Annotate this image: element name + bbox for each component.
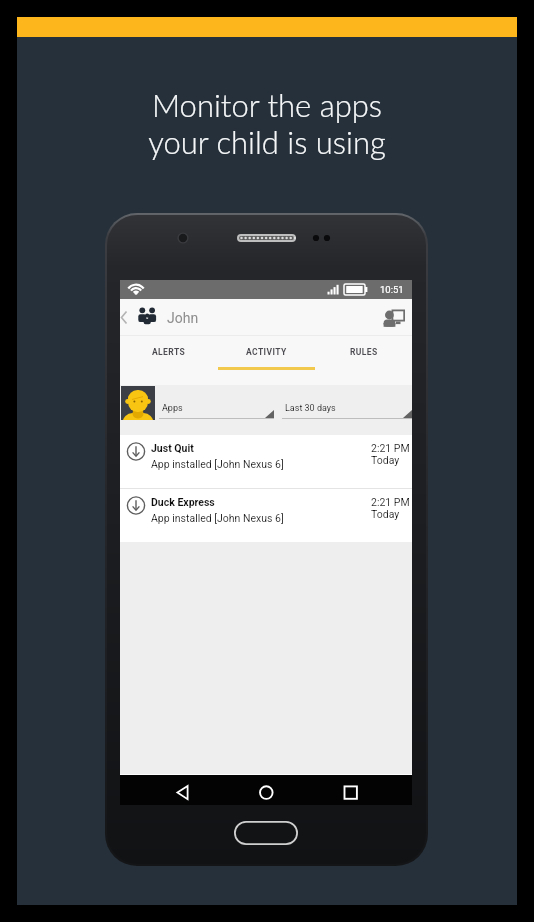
staticText: App installed [John Nexus 6] (151, 512, 284, 524)
staticText: 2:21 PM (371, 442, 410, 454)
staticText: ALERTS (152, 347, 186, 357)
staticText: Apps (162, 403, 183, 414)
button[interactable]: Last 30 days (282, 385, 412, 435)
staticText: App installed [John Nexus 6] (151, 458, 284, 470)
button[interactable]: Duck Express (120, 489, 412, 542)
staticText: Monitor the apps your child is using (17, 86, 517, 161)
staticText: Today (371, 508, 400, 520)
staticText: Duck Express (151, 496, 215, 508)
button[interactable]: Back (120, 299, 134, 336)
staticText: John (167, 310, 199, 326)
staticText: 2:21 PM (371, 496, 410, 508)
button[interactable]: ACTIVITY (218, 336, 315, 385)
button[interactable]: Remote device (376, 299, 412, 336)
staticText: 10:51 (380, 284, 404, 295)
button[interactable]: ALERTS (120, 336, 218, 385)
staticText: Today (371, 454, 400, 466)
button[interactable]: RULES (315, 336, 412, 385)
staticText: ACTIVITY (246, 347, 287, 357)
staticText: Last 30 days (285, 403, 336, 414)
button[interactable]: Apps (159, 385, 274, 435)
staticText: RULES (350, 347, 378, 357)
staticText: Just Quit (151, 442, 194, 454)
button[interactable]: Just Quit (120, 435, 412, 488)
